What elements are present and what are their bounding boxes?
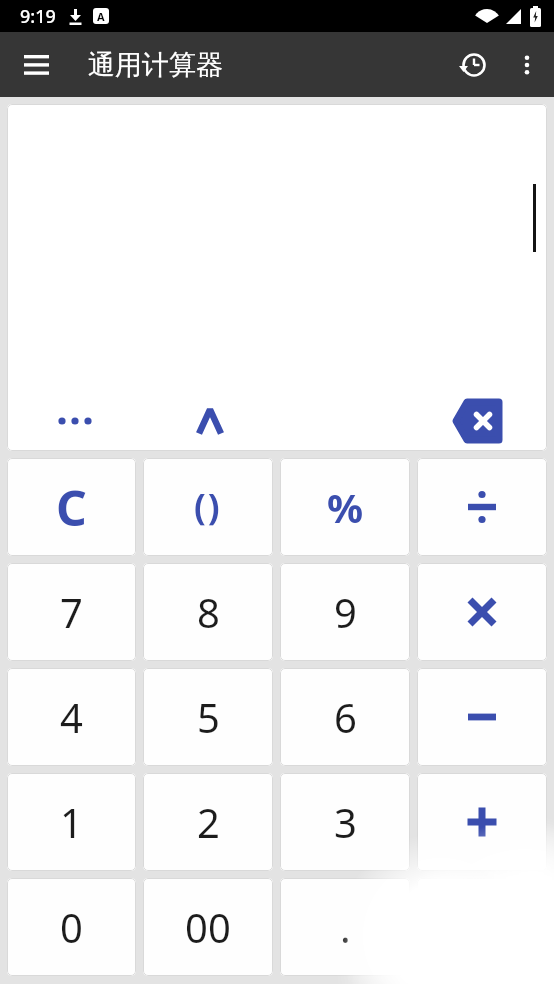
staticText: C (56, 475, 87, 540)
button[interactable]: 3 (280, 773, 410, 871)
staticText: 9 (334, 585, 357, 639)
button[interactable]: 9 (280, 563, 410, 661)
staticText: . (340, 900, 351, 954)
button[interactable] (417, 458, 547, 556)
staticText: A (97, 9, 105, 24)
staticText: 3 (334, 795, 357, 849)
button[interactable]: 8 (143, 563, 273, 661)
button[interactable] (142, 399, 277, 443)
staticText: () (194, 483, 222, 531)
staticText: 5 (197, 690, 220, 744)
staticText: 6 (334, 690, 357, 744)
button[interactable]: 5 (143, 668, 273, 766)
button[interactable] (7, 399, 142, 443)
button[interactable]: () (143, 458, 273, 556)
button[interactable] (417, 563, 547, 661)
button[interactable] (459, 51, 487, 79)
staticText: 4 (60, 690, 83, 744)
staticText: 9:19 (20, 4, 56, 29)
button[interactable] (412, 399, 547, 443)
staticText: 2 (197, 795, 220, 849)
staticText: 0 (60, 900, 83, 954)
button[interactable]: % (280, 458, 410, 556)
staticText: 通用计算器 (88, 48, 223, 82)
staticText: % (327, 480, 364, 534)
button[interactable]: 4 (7, 668, 136, 766)
button[interactable]: . (280, 878, 410, 976)
button[interactable]: 00 (143, 878, 273, 976)
button[interactable]: 7 (7, 563, 136, 661)
button[interactable]: 2 (143, 773, 273, 871)
button[interactable] (417, 773, 547, 871)
button[interactable] (23, 52, 49, 78)
button[interactable]: 6 (280, 668, 410, 766)
staticText: 8 (197, 585, 220, 639)
button[interactable] (417, 668, 547, 766)
button[interactable] (521, 47, 533, 83)
staticText: 7 (60, 585, 83, 639)
button[interactable]: C (7, 458, 136, 556)
staticText: 1 (60, 795, 83, 849)
button[interactable]: 0 (7, 878, 136, 976)
button[interactable]: 1 (7, 773, 136, 871)
staticText: 00 (185, 900, 231, 954)
